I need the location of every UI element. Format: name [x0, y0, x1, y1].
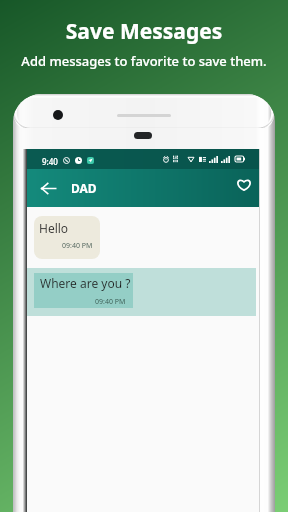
button[interactable]: Where are you ?: [27, 268, 256, 316]
staticText: Where are you ?: [40, 275, 131, 291]
staticText: Hello: [39, 220, 69, 236]
staticText: Add messages to favorite to save them.: [0, 52, 288, 70]
staticText: Save Messages: [0, 17, 288, 46]
button[interactable]: Back: [35, 175, 61, 201]
button[interactable]: DAD: [71, 180, 97, 196]
staticText: 09:40 PM: [62, 241, 93, 251]
button[interactable]: Favorite: [232, 173, 256, 197]
staticText: 09:40 PM: [95, 297, 126, 307]
button[interactable]: Hello: [34, 216, 100, 259]
staticText: 9:40: [42, 156, 58, 167]
